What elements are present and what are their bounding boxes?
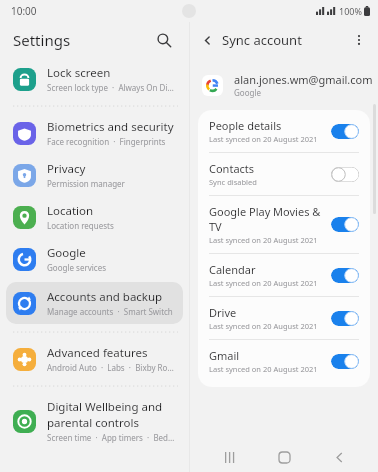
button[interactable]: alan.jones.wm@gmail.com [202, 72, 378, 98]
staticText: Google Play Movies & TV [209, 204, 325, 234]
button[interactable]: People details [198, 110, 370, 152]
button[interactable]: Google Play Movies & TV [198, 196, 370, 253]
staticText: Lock screen [47, 65, 111, 81]
staticText: Contacts [209, 161, 255, 176]
button[interactable]: Home [269, 442, 299, 472]
staticText: alan.jones.wm@gmail.com [234, 72, 373, 87]
staticText: Google [47, 245, 86, 261]
button[interactable]: On [331, 217, 359, 232]
staticText: 10:00 [11, 4, 37, 18]
button[interactable]: Location [0, 196, 189, 238]
button[interactable]: Off [331, 167, 359, 182]
staticText: Location [47, 203, 94, 219]
staticText: Permission manager [47, 178, 125, 189]
staticText: People details [209, 118, 282, 133]
staticText: Accounts and backup [47, 289, 163, 305]
button[interactable]: Back [194, 27, 220, 53]
button[interactable]: On [331, 268, 359, 283]
staticText: Screen time · App timers · Bedtime mode [47, 432, 176, 443]
staticText: Last synced on 20 August 2021 [209, 278, 318, 288]
staticText: Sync account [222, 31, 302, 49]
button[interactable]: Lock screen [0, 58, 189, 100]
staticText: Drive [209, 305, 237, 320]
button[interactable]: Advanced features [0, 338, 189, 380]
staticText: Manage accounts · Smart Switch [47, 306, 173, 317]
staticText: Advanced features [47, 345, 148, 361]
staticText: Gmail [209, 348, 240, 363]
staticText: Google services [47, 262, 107, 273]
button[interactable]: On [331, 354, 359, 369]
staticText: Privacy [47, 161, 86, 177]
staticText: Settings [13, 30, 71, 50]
staticText: Last synced on 20 August 2021 [209, 235, 318, 245]
staticText: Face recognition · Fingerprints [47, 136, 166, 147]
button[interactable]: Back [324, 442, 354, 472]
button[interactable]: Privacy [0, 154, 189, 196]
staticText: Android Auto · Labs · Bixby Routines [47, 362, 176, 373]
button[interactable]: Biometrics and security [0, 112, 189, 154]
button[interactable]: Recent apps [215, 442, 245, 472]
staticText: Calendar [209, 262, 256, 277]
button[interactable]: On [331, 124, 359, 139]
staticText: Last synced on 20 August 2021 [209, 364, 318, 374]
staticText: Screen lock type · Always On Display [47, 82, 176, 93]
staticText: 100% [339, 5, 362, 17]
button[interactable]: More options [346, 27, 372, 53]
button[interactable]: Contacts [198, 153, 370, 195]
button[interactable]: Accounts and backup [6, 282, 183, 324]
staticText: Last synced on 20 August 2021 [209, 134, 318, 144]
staticText: Biometrics and security [47, 119, 174, 135]
staticText: Google [234, 87, 261, 98]
staticText: Digital Wellbeing and parental controls [47, 399, 176, 431]
staticText: Sync disabled [209, 177, 257, 187]
button[interactable]: On [331, 311, 359, 326]
staticText: Last synced on 20 August 2021 [209, 321, 318, 331]
staticText: Location requests [47, 220, 114, 231]
button[interactable]: Google [0, 238, 189, 280]
button[interactable]: Search [149, 25, 179, 55]
button[interactable]: Drive [198, 297, 370, 339]
button[interactable]: Calendar [198, 254, 370, 296]
button[interactable]: Digital Wellbeing and parental controls [0, 392, 189, 450]
button[interactable]: Gmail [198, 340, 370, 382]
